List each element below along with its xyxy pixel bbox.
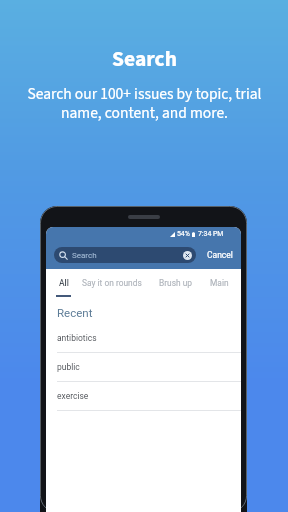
button[interactable]: Cancel [205,247,235,263]
button[interactable]: exercise [46,382,241,410]
staticText: Say it on rounds [82,278,142,288]
staticText: public [57,362,80,372]
button[interactable]: antibiotics [46,324,241,352]
staticText: exercise [57,391,89,401]
button[interactable]: public [46,353,241,381]
button[interactable]: All [56,269,71,300]
button[interactable]: Main [210,278,229,291]
staticText: Brush up [159,278,193,288]
staticText: antibiotics [57,333,97,343]
staticText: 7:34 PM [198,230,224,238]
staticText: Search our 100+ issues by topic, trial n… [27,83,262,124]
button[interactable]: Clear search [183,251,192,260]
button[interactable]: Search [54,247,196,263]
staticText: 54% [177,230,190,238]
staticText: Cancel [207,250,233,260]
staticText: Recent [57,306,93,319]
staticText: Search [72,251,97,260]
button[interactable]: Brush up [159,278,193,291]
staticText: All [59,278,69,288]
button[interactable]: Say it on rounds [82,278,142,291]
staticText: Main [210,278,229,288]
staticText: Search [112,44,177,75]
